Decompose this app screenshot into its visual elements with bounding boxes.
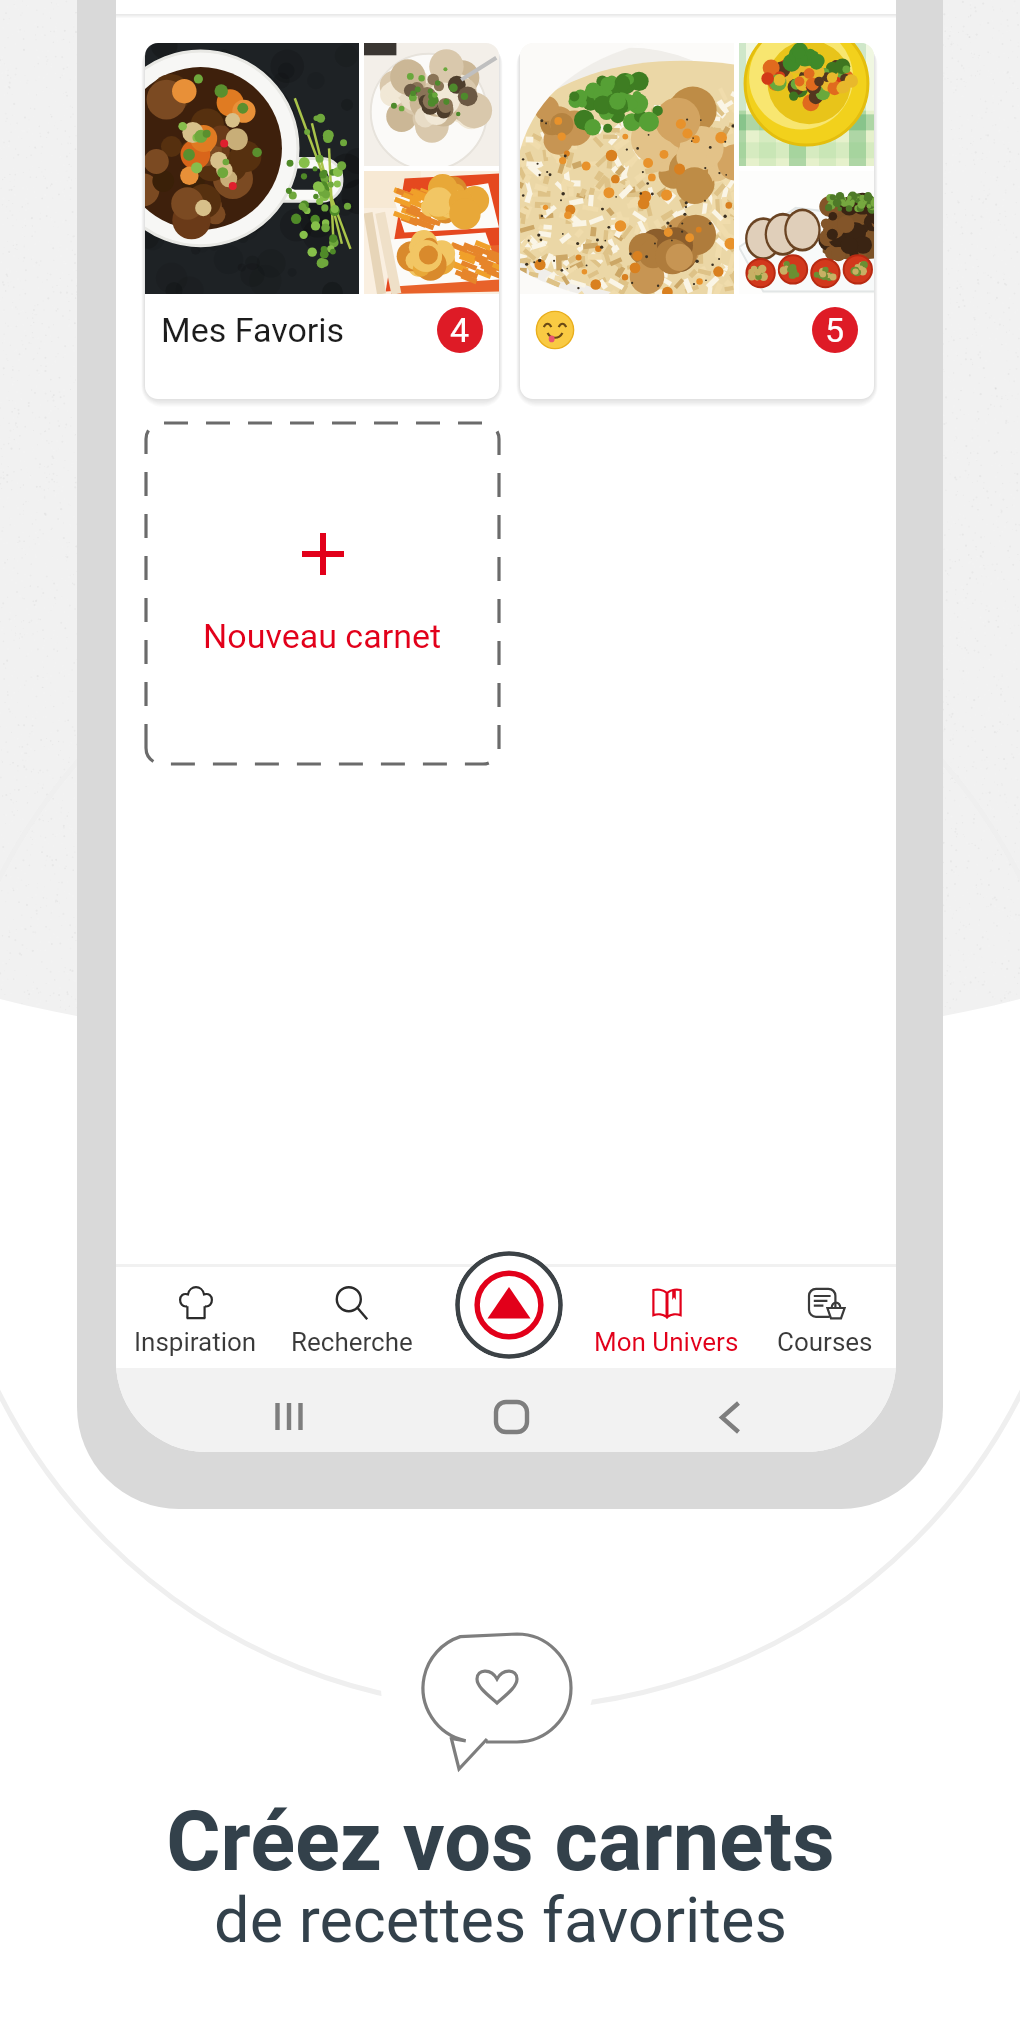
button[interactable]: Recherche bbox=[272, 1267, 432, 1368]
staticText: Nouveau carnet bbox=[203, 616, 442, 656]
staticText: Recherche bbox=[291, 1327, 413, 1357]
button[interactable]: Home bbox=[484, 1385, 534, 1435]
staticText: de recettes favorites bbox=[214, 1884, 787, 1958]
staticText: Créez vos carnets bbox=[166, 1793, 835, 1890]
button[interactable]: Mes Favoris bbox=[145, 43, 499, 399]
staticText: Courses bbox=[777, 1327, 873, 1357]
button[interactable]: Inspiration bbox=[116, 1267, 275, 1368]
button[interactable]: 5 bbox=[520, 43, 874, 399]
button[interactable]: Ajouter une recette bbox=[455, 1251, 563, 1359]
staticText: Inspiration bbox=[134, 1327, 257, 1357]
staticText: 4 bbox=[450, 310, 470, 350]
button[interactable]: Recents bbox=[261, 1385, 311, 1435]
staticText: 5 bbox=[825, 310, 845, 350]
button[interactable]: Mon Univers bbox=[586, 1267, 746, 1368]
staticText: Mon Univers bbox=[594, 1327, 739, 1357]
staticText: Mes Favoris bbox=[161, 310, 345, 350]
button[interactable]: Nouveau carnet bbox=[146, 423, 499, 764]
button[interactable]: Courses bbox=[745, 1267, 896, 1368]
button[interactable]: Back bbox=[712, 1385, 762, 1435]
